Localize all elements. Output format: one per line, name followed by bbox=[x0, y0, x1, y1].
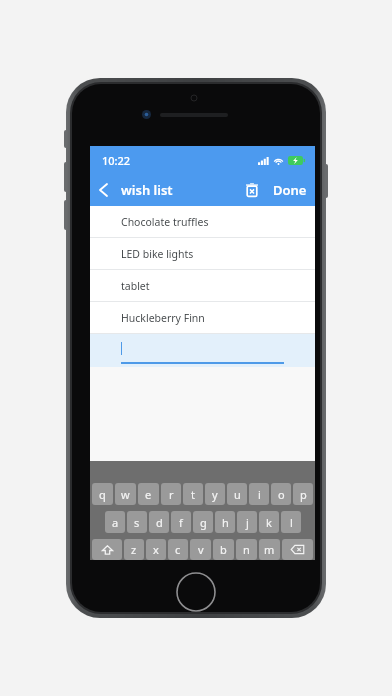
button[interactable]: f bbox=[171, 511, 191, 533]
staticText: g bbox=[200, 515, 207, 530]
button[interactable]: Shift bbox=[92, 539, 122, 560]
staticText: wish list bbox=[121, 181, 173, 199]
staticText: Huckleberry Finn bbox=[121, 311, 205, 325]
button[interactable]: i bbox=[249, 483, 269, 505]
button[interactable]: a bbox=[105, 511, 125, 533]
staticText: l bbox=[290, 515, 293, 530]
button[interactable]: r bbox=[161, 483, 181, 505]
staticText: m bbox=[264, 542, 275, 557]
staticText: u bbox=[234, 487, 241, 502]
button[interactable]: b bbox=[213, 539, 234, 560]
button[interactable]: e bbox=[138, 483, 159, 505]
staticText: a bbox=[112, 515, 119, 530]
button[interactable]: v bbox=[190, 539, 211, 560]
staticText: x bbox=[153, 542, 159, 557]
staticText: r bbox=[169, 487, 174, 502]
button[interactable]: t bbox=[183, 483, 203, 505]
staticText: 10:22 bbox=[102, 153, 131, 168]
staticText: Chocolate truffles bbox=[121, 215, 209, 229]
staticText: z bbox=[131, 542, 137, 557]
button[interactable]: u bbox=[227, 483, 247, 505]
button[interactable] bbox=[90, 334, 315, 367]
button[interactable]: k bbox=[259, 511, 279, 533]
staticText: y bbox=[212, 487, 218, 502]
staticText: Done bbox=[273, 181, 307, 199]
staticText: q bbox=[99, 487, 106, 502]
button[interactable]: c bbox=[168, 539, 188, 560]
button[interactable]: x bbox=[146, 539, 166, 560]
button[interactable]: h bbox=[215, 511, 235, 533]
button[interactable]: d bbox=[149, 511, 169, 533]
button[interactable]: LED bike lights bbox=[90, 238, 315, 270]
staticText: s bbox=[134, 515, 140, 530]
staticText: k bbox=[266, 515, 272, 530]
staticText: LED bike lights bbox=[121, 247, 194, 261]
button[interactable]: l bbox=[281, 511, 301, 533]
staticText: tablet bbox=[121, 279, 150, 293]
staticText: f bbox=[179, 515, 183, 530]
button[interactable]: Delete list bbox=[239, 177, 265, 203]
button[interactable]: q bbox=[92, 483, 113, 505]
staticText: j bbox=[246, 515, 249, 530]
button[interactable]: g bbox=[193, 511, 213, 533]
button[interactable]: tablet bbox=[90, 270, 315, 302]
staticText: v bbox=[198, 542, 204, 557]
button[interactable]: o bbox=[271, 483, 291, 505]
button[interactable]: Back bbox=[90, 177, 116, 203]
button[interactable]: y bbox=[205, 483, 225, 505]
button[interactable]: w bbox=[115, 483, 136, 505]
staticText: n bbox=[243, 542, 250, 557]
button[interactable]: p bbox=[293, 483, 313, 505]
staticText: h bbox=[222, 515, 229, 530]
staticText: o bbox=[278, 487, 285, 502]
button[interactable]: m bbox=[259, 539, 280, 560]
staticText: i bbox=[258, 487, 261, 502]
staticText: d bbox=[156, 515, 163, 530]
staticText: b bbox=[220, 542, 227, 557]
button[interactable]: n bbox=[236, 539, 257, 560]
button[interactable]: Chocolate truffles bbox=[90, 206, 315, 238]
button[interactable]: z bbox=[124, 539, 144, 560]
button[interactable]: Backspace bbox=[282, 539, 313, 560]
staticText: e bbox=[145, 487, 152, 502]
button[interactable]: j bbox=[237, 511, 257, 533]
button[interactable]: Done bbox=[265, 175, 315, 205]
button[interactable]: Huckleberry Finn bbox=[90, 302, 315, 334]
staticText: c bbox=[175, 542, 181, 557]
staticText: w bbox=[121, 487, 130, 502]
button[interactable]: s bbox=[127, 511, 147, 533]
staticText: p bbox=[300, 487, 307, 502]
staticText: t bbox=[191, 487, 195, 502]
